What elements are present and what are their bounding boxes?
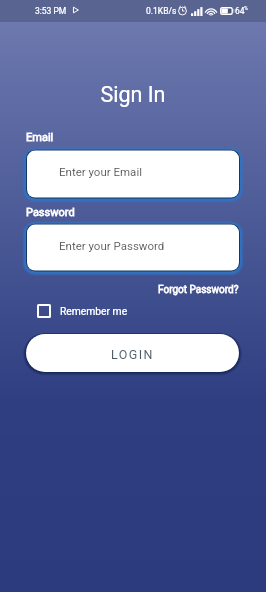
staticText: Email (26, 131, 54, 144)
button[interactable]: LOGIN (21, 329, 244, 382)
staticText: Remember me (60, 305, 128, 317)
staticText: % (244, 5, 249, 11)
staticText: 64 (235, 6, 245, 16)
button[interactable]: Enter your Password (22, 220, 244, 277)
button[interactable]: Forgot Password? (158, 284, 239, 296)
staticText: Enter your Password (59, 239, 165, 252)
staticText: Forgot Password? (158, 284, 239, 296)
staticText: 0.1KB/s (146, 6, 177, 16)
button[interactable]: Remember me (37, 304, 128, 318)
staticText: Sign In (0, 82, 266, 107)
button[interactable]: Enter your Email (22, 146, 244, 204)
staticText: 3:53 PM (35, 6, 67, 16)
staticText: Enter your Email (59, 165, 142, 178)
staticText: LOGIN (111, 347, 154, 362)
staticText: Password (26, 206, 75, 219)
